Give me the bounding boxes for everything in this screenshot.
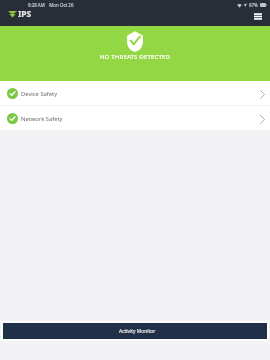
staticText: Device Safety [21, 90, 58, 98]
staticText: IPS [18, 8, 32, 20]
staticText: Network Safety [21, 115, 63, 123]
button[interactable]: Menu [254, 13, 262, 20]
button[interactable]: Network Safety [0, 106, 270, 130]
staticText: 67% [249, 2, 258, 8]
button[interactable]: Device Safety [0, 81, 270, 105]
staticText: NO THREATS DETECTED [0, 52, 270, 60]
staticText: 9:28 AM Mon Oct 26 [28, 2, 74, 8]
staticText: Activity Monitor [119, 328, 156, 335]
button[interactable]: Activity Monitor [3, 323, 267, 339]
